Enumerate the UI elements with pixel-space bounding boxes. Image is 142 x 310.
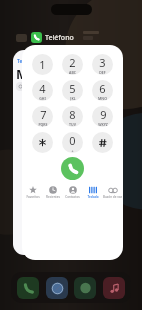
button[interactable]: 0	[62, 132, 83, 153]
staticText: DEF	[99, 70, 106, 75]
staticText: 1	[39, 57, 46, 72]
button[interactable]: Contactos	[63, 185, 82, 199]
staticText: ABC	[69, 70, 76, 75]
staticText: 4	[39, 81, 46, 96]
button[interactable]: Teclado	[83, 185, 102, 199]
staticText: GHI	[39, 96, 46, 101]
button[interactable]: 3	[92, 54, 113, 75]
staticText: Telé	[17, 58, 27, 65]
staticText: PQRS	[38, 122, 48, 127]
button[interactable]: Buzón de voz	[103, 185, 122, 199]
staticText: TUV	[69, 122, 76, 127]
button[interactable]: *	[32, 132, 53, 153]
button[interactable]	[17, 277, 39, 299]
staticText: Favoritos	[26, 195, 40, 199]
staticText: 2	[69, 55, 76, 70]
button[interactable]: 7	[32, 106, 53, 127]
button[interactable]: 2	[62, 54, 83, 75]
staticText: Contactos	[65, 195, 80, 199]
button[interactable]: 4	[32, 80, 53, 101]
button[interactable]	[46, 277, 68, 299]
staticText: JKL	[70, 96, 76, 101]
staticText: 5	[69, 81, 76, 96]
staticText: 8	[69, 107, 76, 122]
staticText: 0	[69, 133, 76, 148]
button[interactable]	[103, 277, 125, 299]
staticText: 9	[100, 107, 107, 122]
staticText: +	[71, 148, 74, 153]
button[interactable]: 9	[92, 106, 113, 127]
staticText: Teclado	[87, 195, 99, 199]
staticText: Buzón de voz	[103, 195, 122, 199]
staticText: MNO	[98, 96, 107, 101]
staticText: Teléfono	[45, 33, 74, 43]
button[interactable]: Llamar	[61, 157, 84, 180]
staticText: WXYZ	[98, 122, 108, 127]
button[interactable]: 8	[62, 106, 83, 127]
staticText: M	[16, 65, 29, 83]
button[interactable]: Recientes	[43, 185, 62, 199]
staticText: 6	[99, 81, 106, 96]
staticText: 7	[40, 107, 47, 122]
button[interactable]: #	[92, 132, 113, 153]
button[interactable]: 6	[92, 80, 113, 101]
button[interactable]	[74, 277, 96, 299]
staticText: 3	[99, 55, 106, 70]
button[interactable]: Favoritos	[23, 185, 42, 199]
staticText: Recientes	[46, 195, 60, 199]
button[interactable]: 5	[62, 80, 83, 101]
button[interactable]: 1	[32, 54, 53, 75]
